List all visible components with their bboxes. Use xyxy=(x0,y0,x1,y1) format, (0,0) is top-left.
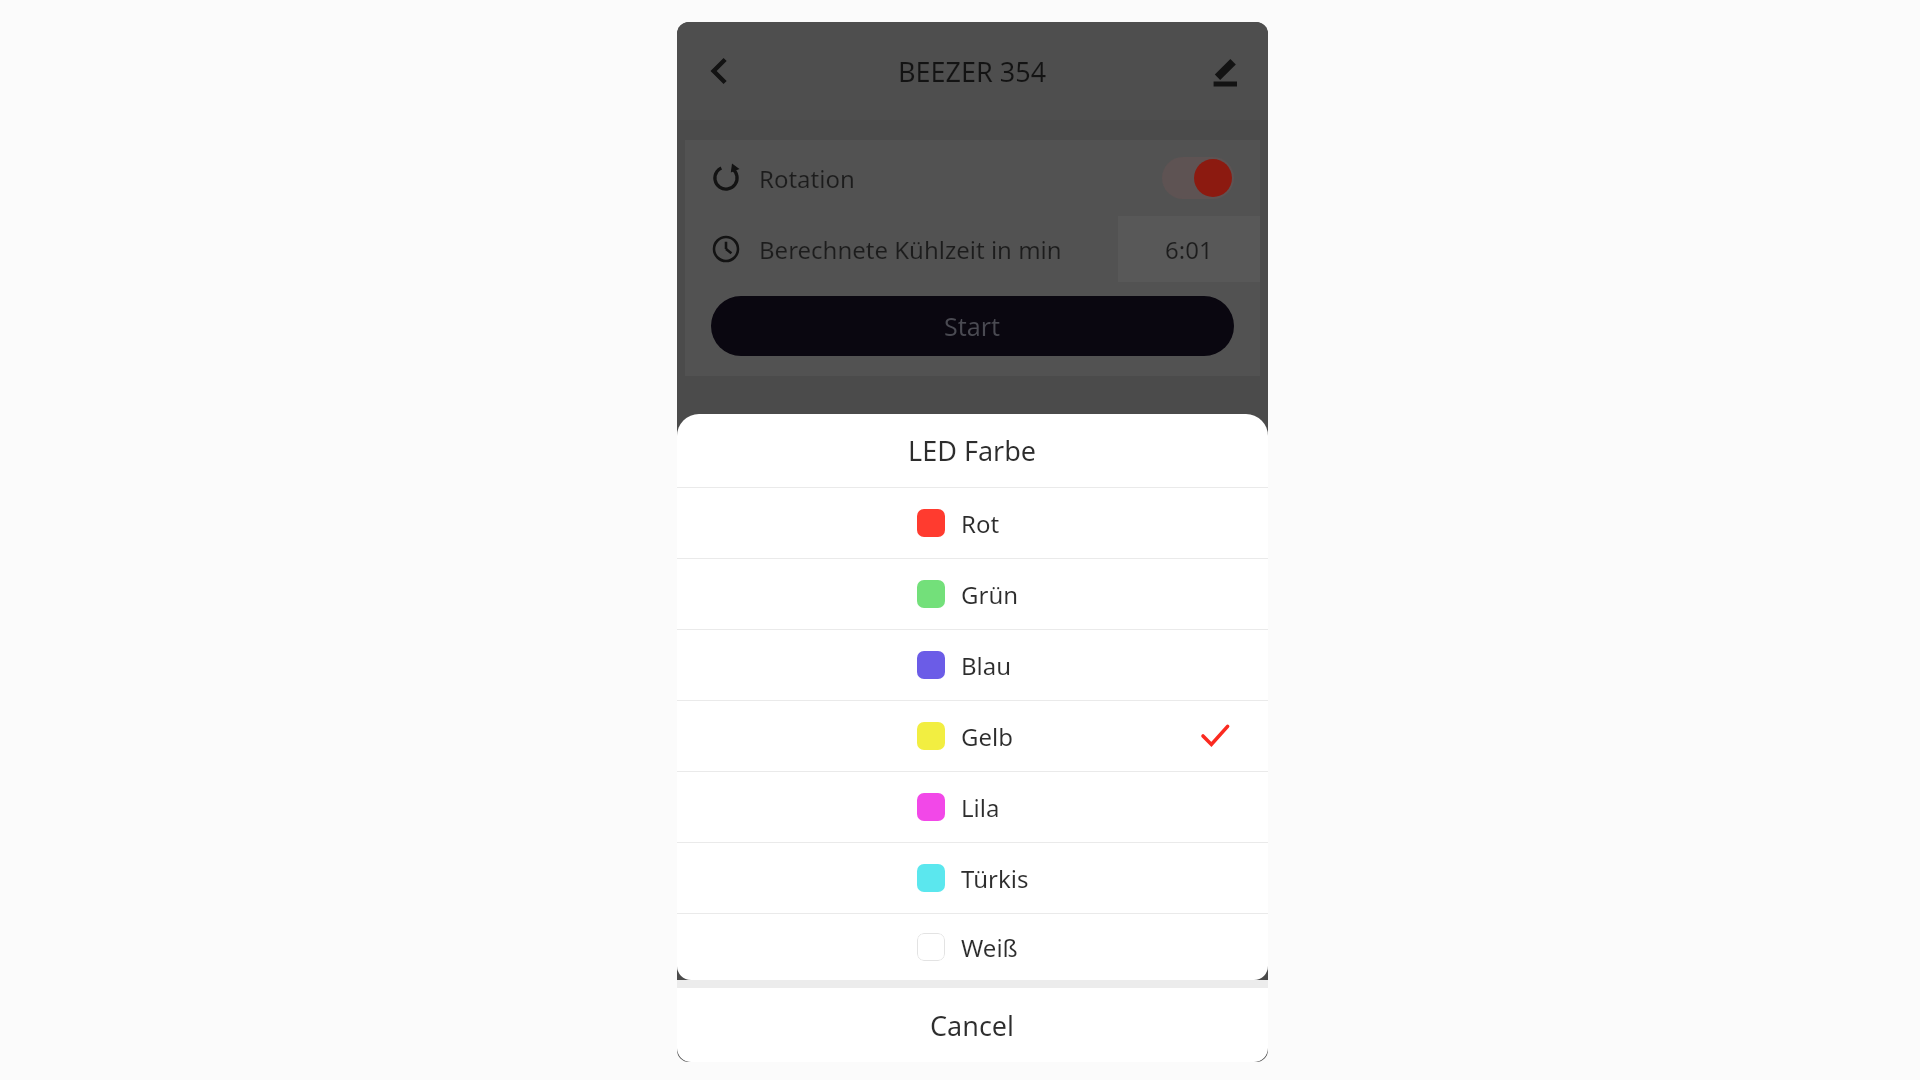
staticText: LED Farbe xyxy=(908,432,1037,469)
staticText: BEEZER 354 xyxy=(898,53,1047,90)
button[interactable]: Back xyxy=(691,42,749,100)
staticText: Türkis xyxy=(961,862,1029,895)
staticText: Weiß xyxy=(961,931,1018,964)
button[interactable]: Rot xyxy=(677,488,1268,558)
staticText: Rot xyxy=(961,507,1000,540)
staticText: Gelb xyxy=(961,720,1013,753)
staticText: Start xyxy=(944,309,1001,343)
button[interactable]: Weiß xyxy=(677,914,1268,980)
staticText: 6:01 xyxy=(1165,233,1213,266)
button[interactable]: Edit xyxy=(1196,42,1254,100)
button[interactable]: Rotation xyxy=(711,140,1234,216)
staticText: Grün xyxy=(961,578,1019,611)
staticText: Rotation xyxy=(759,162,855,195)
button[interactable]: Berechnete Kühlzeit in min xyxy=(711,216,1260,282)
button[interactable]: Türkis xyxy=(677,843,1268,913)
button[interactable]: Cancel xyxy=(677,988,1268,1062)
staticText: Cancel xyxy=(930,1007,1015,1044)
button[interactable]: Start xyxy=(711,296,1234,356)
button[interactable]: Rotation toggle xyxy=(1162,157,1234,199)
button[interactable]: Lila xyxy=(677,772,1268,842)
staticText: Lila xyxy=(961,791,1000,824)
button[interactable]: Grün xyxy=(677,559,1268,629)
staticText: Blau xyxy=(961,649,1012,682)
button[interactable]: Blau xyxy=(677,630,1268,700)
staticText: Berechnete Kühlzeit in min xyxy=(759,233,1062,266)
button[interactable]: Gelb xyxy=(677,701,1268,771)
